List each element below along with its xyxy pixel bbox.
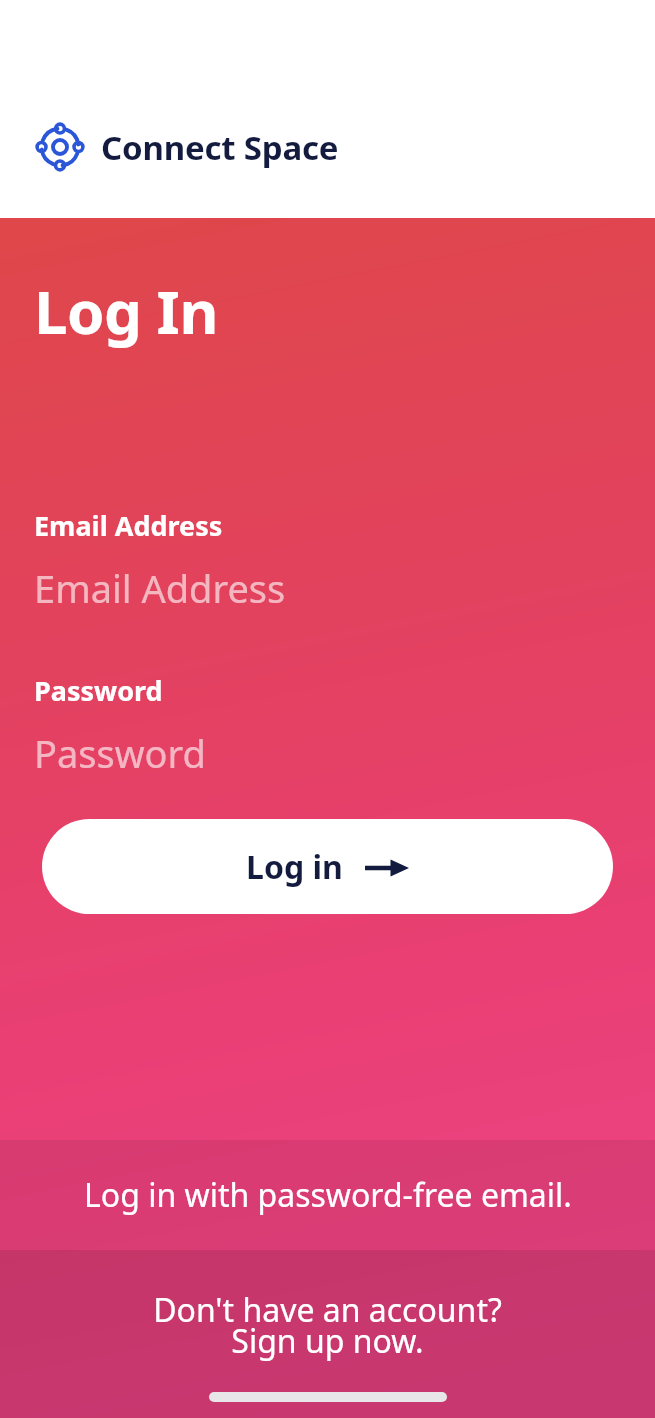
button[interactable]: Connect Space [34,121,339,173]
button[interactable]: Log in [42,819,613,914]
other: Home indicator [209,1392,447,1402]
staticText: Email Address [34,562,286,614]
staticText: Password [34,727,206,779]
button[interactable]: Log in with password-free email. [0,1140,655,1250]
staticText: Password [34,672,163,709]
button[interactable]: Email Address [0,507,655,614]
staticText: Log In [34,270,218,352]
button[interactable]: Don't have an account? Sign up now. [153,1288,502,1363]
button[interactable]: Password [0,672,655,779]
staticText: Connect Space [101,125,339,170]
staticText: Log in with password-free email. [84,1173,572,1217]
staticText: Log in [246,845,343,889]
staticText: Email Address [34,507,223,544]
